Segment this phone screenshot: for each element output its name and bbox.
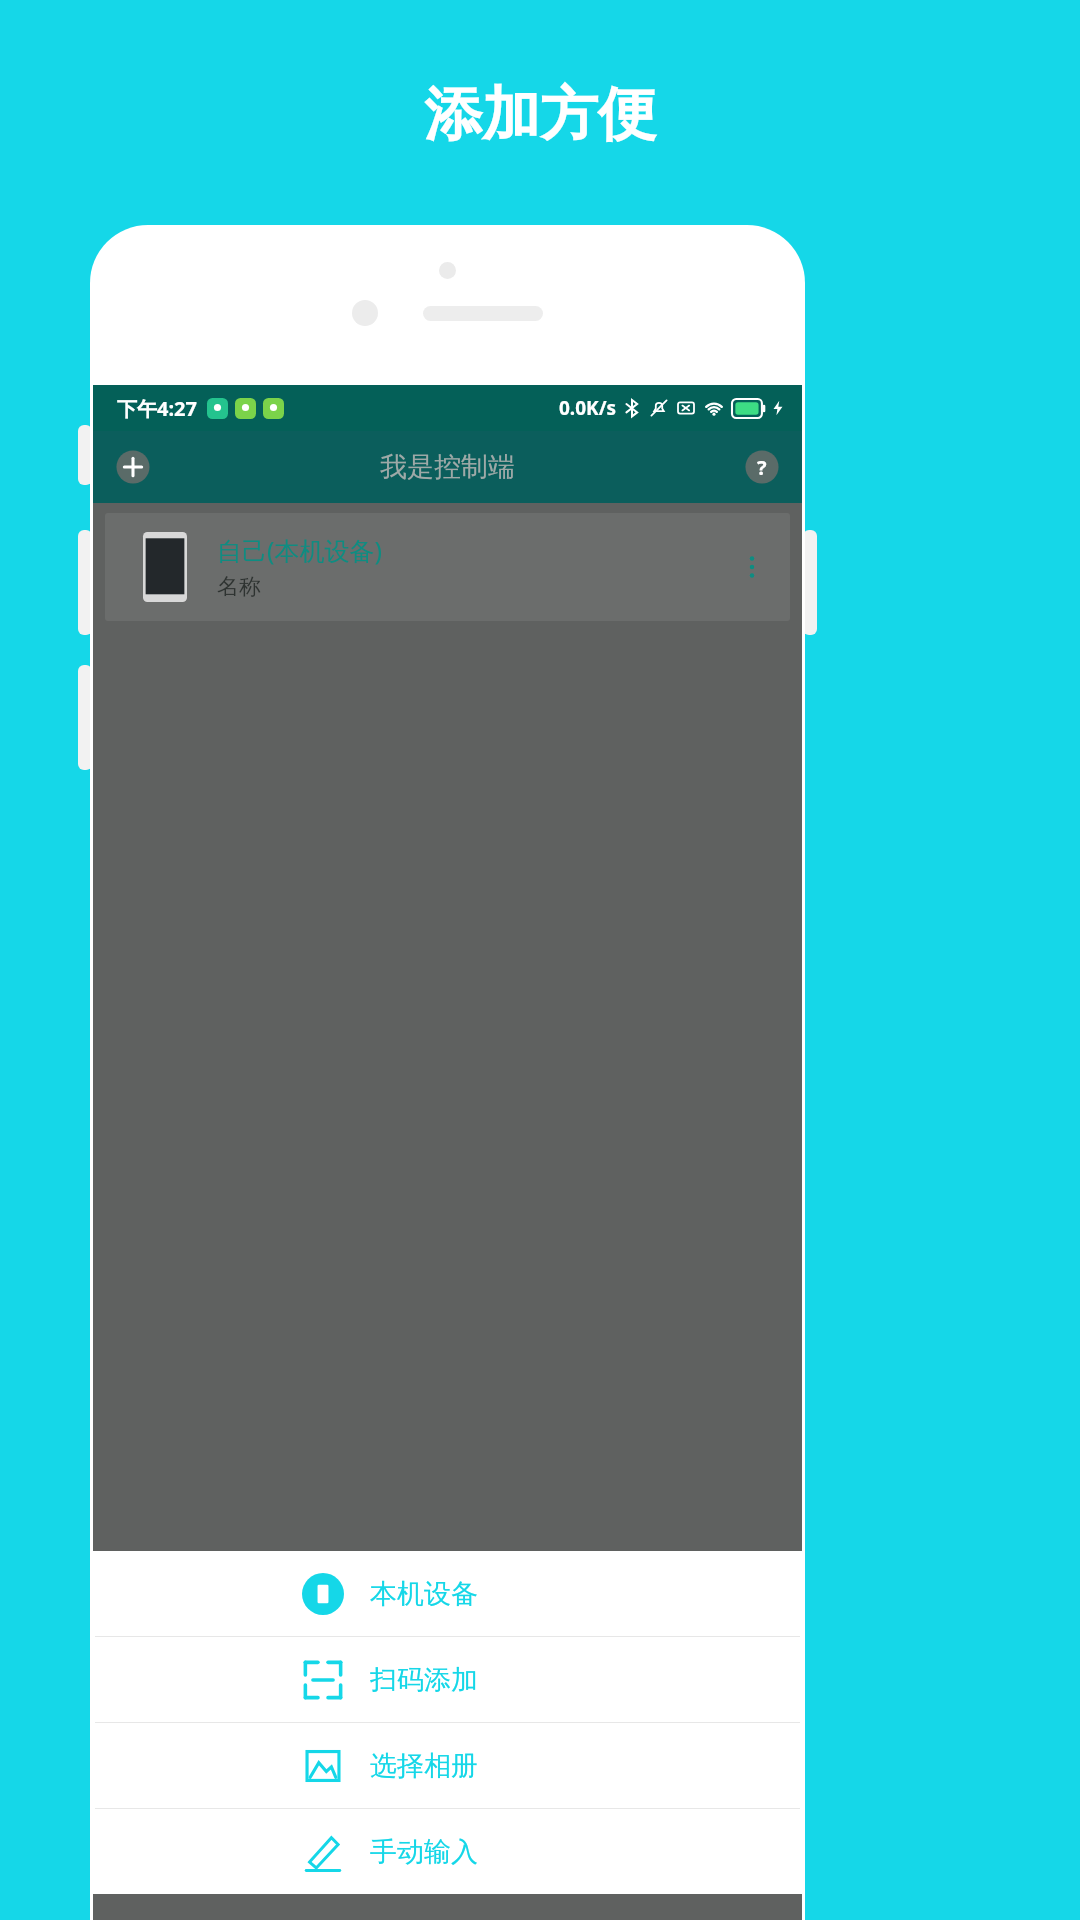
staticText: 自己(本机设备) — [217, 533, 383, 567]
staticText: 扫码添加 — [370, 1663, 478, 1697]
staticText: 选择相册 — [370, 1749, 478, 1783]
staticText: 0.0K/s — [559, 395, 617, 421]
button[interactable]: 手动输入 — [93, 1809, 802, 1894]
button[interactable]: More options — [730, 545, 774, 589]
button[interactable]: 自己(本机设备) — [105, 513, 790, 621]
staticText: ? — [757, 454, 767, 481]
staticText: 手动输入 — [370, 1835, 478, 1869]
button[interactable]: Help — [744, 449, 780, 485]
staticText: 下午4:27 — [117, 395, 197, 422]
staticText: 添加方便 — [424, 78, 656, 151]
staticText: 名称 — [217, 573, 261, 601]
button[interactable]: 本机设备 — [93, 1551, 802, 1636]
staticText: 我是控制端 — [380, 450, 515, 484]
button[interactable]: 选择相册 — [93, 1723, 802, 1808]
button[interactable]: Add device — [115, 449, 151, 485]
staticText: 本机设备 — [370, 1577, 478, 1611]
button[interactable]: 扫码添加 — [93, 1637, 802, 1722]
